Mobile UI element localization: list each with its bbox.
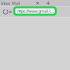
staticText: Inbox Mail bbox=[1, 1, 20, 6]
button[interactable]: https://www.gmail.com bbox=[13, 6, 57, 16]
staticText: https://www.gmail.com bbox=[17, 8, 55, 14]
button[interactable]: Reload bbox=[1, 7, 10, 16]
button[interactable]: New tab bbox=[45, 0, 51, 6]
button[interactable]: Site information bbox=[8, 8, 13, 16]
button[interactable]: Close tab bbox=[34, 0, 41, 6]
